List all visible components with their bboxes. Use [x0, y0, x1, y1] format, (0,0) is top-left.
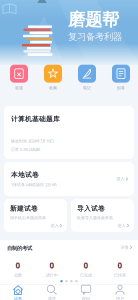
staticText: 进入 — [117, 176, 125, 181]
staticText: 0 — [49, 260, 54, 271]
staticText: 1张试卷 648道题目 225 KB — [11, 182, 57, 187]
button[interactable]: 笔记 — [70, 64, 104, 91]
staticText: 进入 — [118, 223, 126, 228]
staticText: 群组 — [82, 296, 90, 300]
staticText: 磨题帮 — [68, 9, 119, 30]
staticText: 试卷 — [14, 296, 22, 300]
staticText: 组卷 — [117, 85, 125, 90]
staticText: 进入 — [51, 223, 59, 228]
staticText: 已结束 — [114, 273, 126, 278]
button[interactable]: 本地试卷 — [4, 162, 134, 196]
staticText: 答题 — [15, 85, 23, 90]
button[interactable]: 答题 — [2, 64, 36, 91]
button[interactable]: 群组 — [69, 285, 103, 300]
staticText: 复习备考利器 — [68, 31, 122, 42]
button[interactable]: 组卷 — [104, 64, 138, 91]
staticText: 笔记 — [83, 85, 91, 90]
staticText: 自制的考试 — [7, 245, 32, 252]
button[interactable]: 收藏 — [36, 64, 70, 91]
staticText: 收藏 — [49, 85, 57, 90]
button[interactable]: 计算机基础题库 — [4, 106, 134, 159]
staticText: 本地试卷 — [11, 171, 39, 179]
button[interactable]: 导入试卷 — [71, 199, 134, 232]
button[interactable]: 新建试卷 — [4, 199, 67, 232]
staticText: 题库 — [48, 296, 56, 300]
button[interactable]: 用户 — [103, 285, 137, 300]
button[interactable]: 题库 — [35, 285, 69, 300]
staticText: 进行中 — [46, 273, 58, 278]
staticText: 用户 — [116, 296, 124, 300]
staticText: 0 — [117, 260, 122, 271]
staticText: 修改时间 2024年7月10日 — [11, 138, 54, 144]
staticText: 批量导入题库效率高 — [77, 215, 113, 220]
button[interactable]: 详情 — [121, 245, 132, 250]
button[interactable]: 试卷 — [1, 285, 35, 300]
staticText: 用手机出考题很简单 — [10, 215, 46, 220]
staticText: 新建试卷 — [10, 204, 38, 213]
staticText: 0 — [15, 260, 20, 271]
staticText: 计算机基础题库 — [11, 115, 60, 123]
staticText: 0 — [83, 260, 88, 271]
staticText: 已完成 — [80, 273, 92, 278]
staticText: 总数 — [14, 273, 22, 278]
staticText: 已答 0.3% (2/648) — [11, 147, 40, 152]
staticText: 导入试卷 — [77, 204, 105, 213]
staticText: 详情 — [121, 245, 129, 250]
